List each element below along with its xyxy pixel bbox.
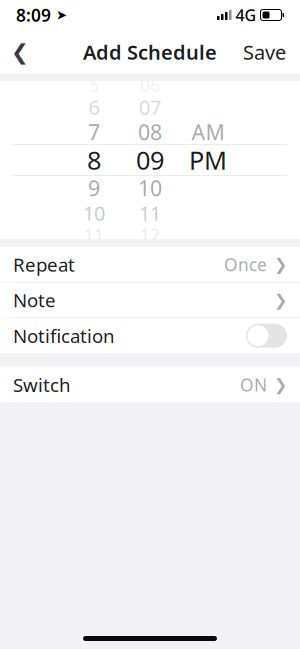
staticText: Notification <box>13 323 115 348</box>
button[interactable]: Save <box>229 30 300 74</box>
staticText: Once <box>224 253 267 276</box>
staticText: ❮ <box>11 40 29 64</box>
staticText: Repeat <box>13 252 75 277</box>
button[interactable]: Switch <box>0 367 300 402</box>
staticText: ON <box>240 373 267 396</box>
staticText: 10 <box>83 200 105 226</box>
staticText: 8 <box>87 143 101 177</box>
staticText: 08 <box>138 118 162 146</box>
staticText: ❯ <box>274 291 287 309</box>
staticText: 4G <box>235 4 256 26</box>
staticText: AM <box>191 118 224 146</box>
staticText: 5 <box>89 73 99 96</box>
staticText: ➤ <box>51 7 67 22</box>
staticText: 06 <box>140 73 160 96</box>
staticText: 12 <box>140 223 160 246</box>
staticText: 11 <box>139 200 161 226</box>
staticText: 11 <box>84 223 104 246</box>
button[interactable]: Repeat <box>0 247 300 282</box>
button[interactable]: Notification <box>0 318 300 353</box>
button[interactable]: Back <box>0 30 40 74</box>
staticText: Switch <box>13 372 71 397</box>
staticText: ❯ <box>274 376 287 394</box>
staticText: 9 <box>88 174 100 202</box>
staticText: PM <box>189 143 227 177</box>
staticText: Add Schedule <box>83 39 217 65</box>
staticText: 07 <box>139 94 161 120</box>
staticText: 8:09 <box>16 3 51 26</box>
staticText: Save <box>243 39 286 65</box>
staticText: ❯ <box>274 255 287 274</box>
staticText: Note <box>13 288 56 312</box>
staticText: 09 <box>136 143 164 177</box>
staticText: 7 <box>88 118 100 146</box>
button[interactable]: Note <box>0 283 300 318</box>
staticText: 10 <box>138 174 162 202</box>
staticText: 6 <box>88 94 99 120</box>
